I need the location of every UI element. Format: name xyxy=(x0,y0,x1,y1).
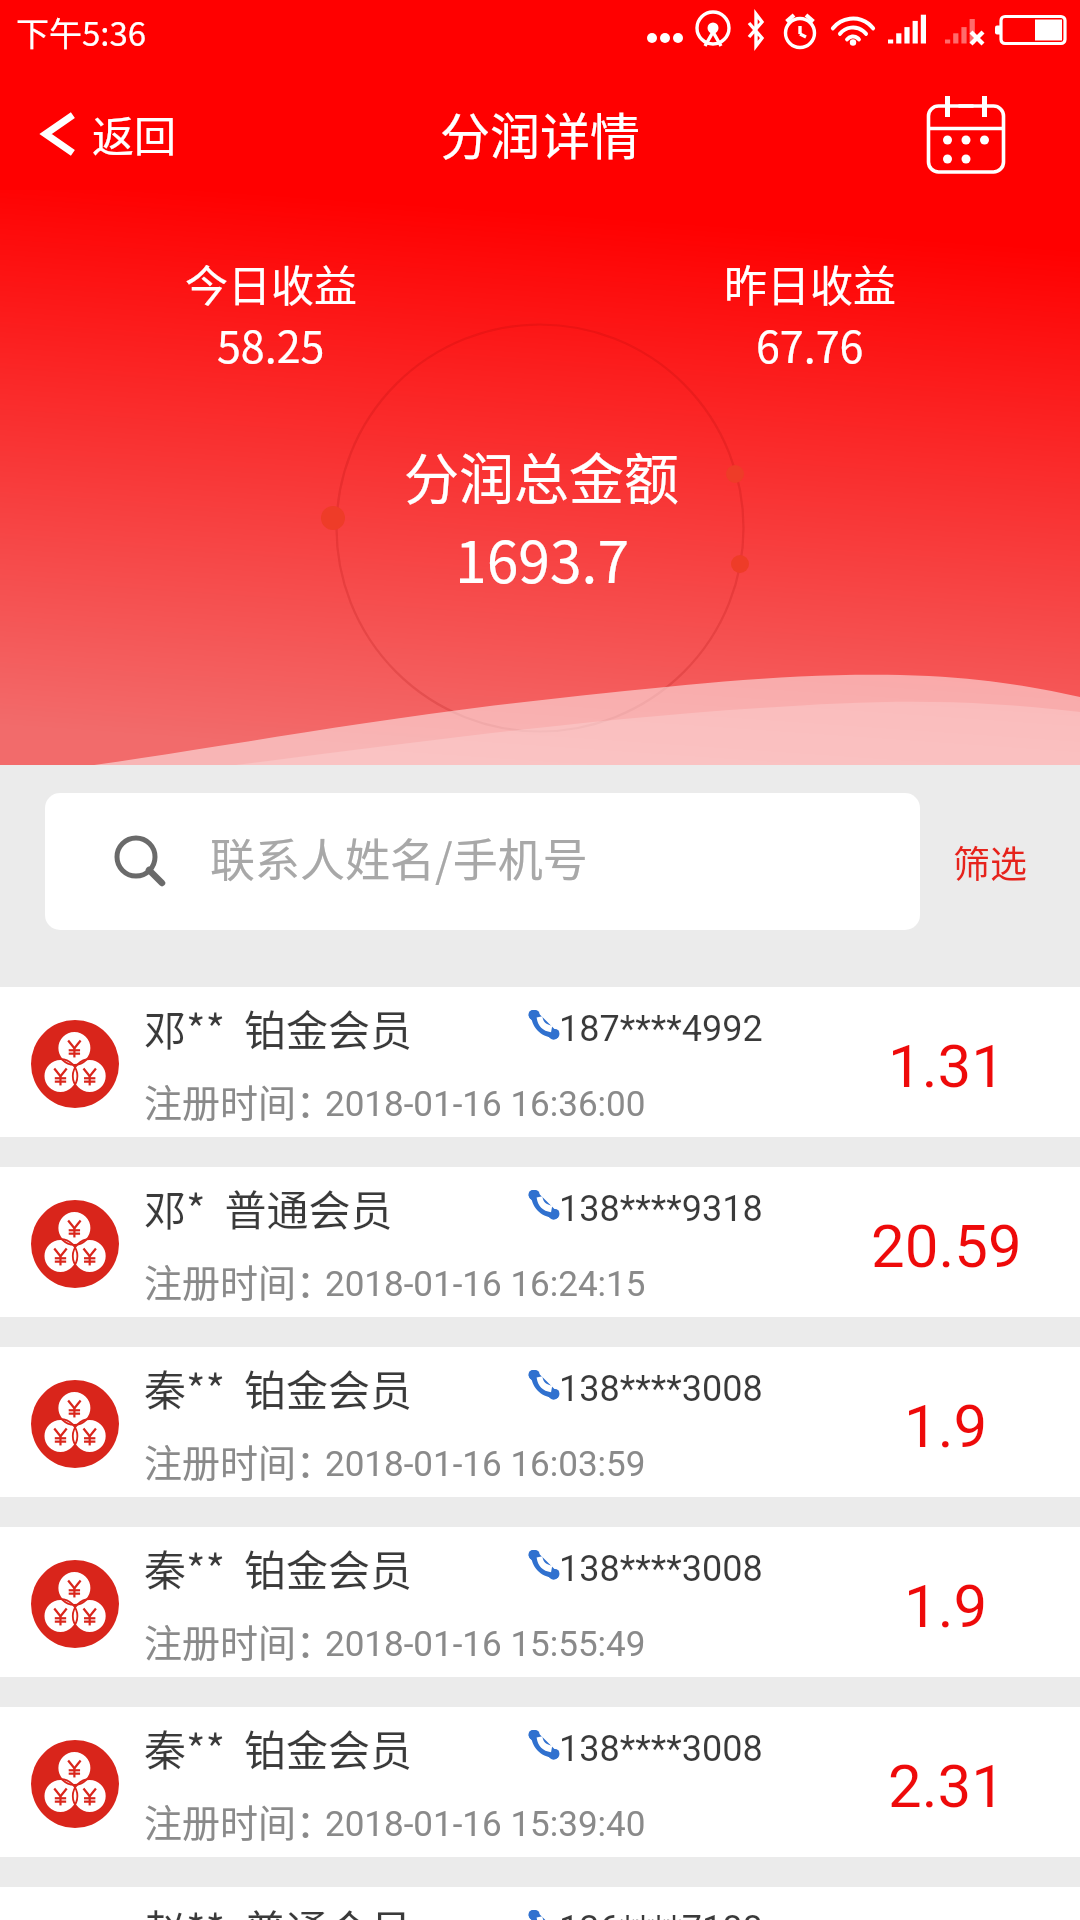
button[interactable]: 秦** 铂金会员 xyxy=(0,1527,1080,1677)
staticText: 1.31 xyxy=(888,1031,1005,1101)
staticText: 联系人姓名/手机号 xyxy=(210,825,588,890)
button[interactable]: 返回 xyxy=(12,81,201,193)
staticText: 返回 xyxy=(92,103,177,164)
staticText: 筛选 xyxy=(953,835,1027,889)
staticText: 1.9 xyxy=(904,1571,988,1641)
staticText: 2.31 xyxy=(888,1751,1005,1821)
staticText: 秦** 铂金会员 xyxy=(144,1717,413,1778)
staticText: 分润总金额 xyxy=(404,435,680,515)
staticText: 1.9 xyxy=(904,1391,988,1461)
staticText: 138****9318 xyxy=(559,1188,763,1230)
staticText: 138****3008 xyxy=(559,1368,763,1410)
staticText: 2018-01-16 15:55:49 xyxy=(325,1624,646,1665)
button[interactable]: 秦** 铂金会员 xyxy=(0,1707,1080,1857)
staticText: 今日收益 xyxy=(185,252,357,314)
staticText: 秦** 铂金会员 xyxy=(144,1357,413,1418)
staticText: 秦** 铂金会员 xyxy=(144,1537,413,1598)
staticText: 136****7188 xyxy=(559,1908,763,1920)
staticText: 2018-01-16 15:39:40 xyxy=(325,1804,646,1845)
button[interactable]: 邓* 普通会员 xyxy=(0,1167,1080,1317)
button[interactable]: Calendar xyxy=(916,85,1016,185)
staticText: 注册时间： xyxy=(144,1253,335,1308)
staticText: 邓** 铂金会员 xyxy=(144,997,413,1058)
staticText: 2018-01-16 16:36:00 xyxy=(325,1084,646,1125)
staticText: 注册时间： xyxy=(144,1433,335,1488)
staticText: 注册时间： xyxy=(144,1793,335,1848)
button[interactable]: 筛选 xyxy=(935,793,1045,930)
staticText: 赵** 普通会员 xyxy=(144,1897,413,1920)
staticText: 187****4992 xyxy=(559,1008,763,1050)
staticText: 注册时间： xyxy=(144,1073,335,1128)
staticText: 1693.7 xyxy=(455,517,630,600)
staticText: 2018-01-16 16:24:15 xyxy=(325,1264,646,1305)
staticText: 138****3008 xyxy=(559,1548,763,1590)
button[interactable]: 赵** 普通会员 xyxy=(0,1887,1080,1920)
staticText: 注册时间： xyxy=(144,1613,335,1668)
button[interactable]: 联系人姓名/手机号 xyxy=(45,793,920,930)
staticText: 昨日收益 xyxy=(724,252,896,314)
staticText: 67.76 xyxy=(756,313,864,375)
staticText: 20.59 xyxy=(871,1211,1022,1281)
staticText: 下午5:36 xyxy=(16,8,147,56)
staticText: 分润详情 xyxy=(440,97,640,169)
staticText: 2018-01-16 16:03:59 xyxy=(325,1444,646,1485)
button[interactable]: 邓** 铂金会员 xyxy=(0,987,1080,1137)
staticText: 邓* 普通会员 xyxy=(144,1177,393,1238)
staticText: 58.25 xyxy=(217,313,325,375)
staticText: 138****3008 xyxy=(559,1728,763,1770)
button[interactable]: 秦** 铂金会员 xyxy=(0,1347,1080,1497)
